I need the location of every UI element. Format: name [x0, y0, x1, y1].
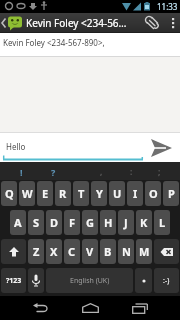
button[interactable]: [123, 296, 157, 320]
staticText: H: [104, 215, 113, 230]
staticText: Z: [33, 244, 40, 259]
button[interactable]: C: [64, 239, 80, 264]
staticText: F: [69, 215, 76, 230]
button[interactable]: N: [118, 239, 134, 264]
button[interactable]: I: [127, 181, 143, 206]
button[interactable]: Z: [28, 239, 44, 264]
staticText: B: [104, 244, 112, 259]
button[interactable]: V: [82, 239, 98, 264]
staticText: D: [50, 215, 59, 230]
button[interactable]: K: [136, 210, 152, 235]
staticText: O: [149, 186, 158, 201]
button[interactable]: [135, 268, 152, 293]
button[interactable]: S: [28, 210, 44, 235]
staticText: L: [159, 215, 166, 230]
button[interactable]: D: [46, 210, 62, 235]
button[interactable]: J: [118, 210, 134, 235]
staticText: ?: [51, 166, 56, 178]
button[interactable]: E: [37, 181, 53, 206]
staticText: R: [59, 186, 67, 201]
button[interactable]: Q: [1, 181, 17, 206]
button[interactable]: [154, 239, 179, 264]
staticText: E: [42, 186, 49, 201]
button[interactable]: L: [154, 210, 170, 235]
button[interactable]: H: [100, 210, 116, 235]
staticText: T: [78, 186, 85, 201]
button[interactable]: O: [145, 181, 161, 206]
button[interactable]: G: [82, 210, 98, 235]
staticText: G: [86, 215, 94, 230]
button[interactable]: Y: [91, 181, 107, 206]
staticText: 11:33: [157, 1, 178, 12]
button[interactable]: U: [109, 181, 125, 206]
button[interactable]: R: [55, 181, 71, 206]
staticText: W: [22, 186, 33, 201]
staticText: A: [14, 215, 22, 230]
staticText: U: [113, 186, 122, 201]
staticText: P: [168, 186, 175, 201]
staticText: N: [122, 244, 131, 259]
button[interactable]: Kevin Foley <234-56…: [0, 13, 180, 32]
staticText: ,: [100, 166, 103, 177]
staticText: M: [139, 244, 150, 259]
staticText: ;: [158, 166, 161, 177]
staticText: ?123: [6, 276, 22, 286]
button[interactable]: F: [64, 210, 80, 235]
button[interactable]: M: [136, 239, 152, 264]
button[interactable]: [144, 15, 160, 31]
staticText: C: [68, 244, 76, 259]
staticText: X: [50, 244, 58, 259]
button[interactable]: B: [100, 239, 116, 264]
button[interactable]: [168, 15, 178, 31]
staticText: !: [20, 166, 23, 178]
button[interactable]: [150, 134, 180, 162]
button[interactable]: English (UK): [46, 268, 133, 293]
staticText: V: [86, 244, 94, 259]
button[interactable]: T: [73, 181, 89, 206]
button[interactable]: A: [10, 210, 26, 235]
button[interactable]: :-): [154, 268, 179, 293]
staticText: Kevin Foley <234-567-890>,: [3, 37, 105, 48]
button[interactable]: Kevin Foley <234-567-890>,: [0, 33, 180, 56]
staticText: :: [130, 166, 133, 177]
staticText: K: [140, 215, 148, 230]
staticText: J: [124, 215, 128, 230]
button[interactable]: W: [19, 181, 35, 206]
button[interactable]: [23, 296, 57, 320]
staticText: Kevin Foley <234-56…: [26, 16, 144, 30]
staticText: Q: [5, 186, 14, 201]
staticText: S: [33, 215, 40, 230]
staticText: :-): [163, 276, 170, 286]
button[interactable]: ?123: [1, 268, 26, 293]
staticText: Hello: [6, 141, 26, 152]
staticText: Y: [96, 186, 103, 201]
button[interactable]: [73, 296, 107, 320]
button[interactable]: P: [163, 181, 179, 206]
staticText: English (UK): [70, 276, 110, 286]
button[interactable]: X: [46, 239, 62, 264]
staticText: I: [133, 186, 138, 201]
button[interactable]: [28, 268, 44, 293]
button[interactable]: [1, 239, 26, 264]
